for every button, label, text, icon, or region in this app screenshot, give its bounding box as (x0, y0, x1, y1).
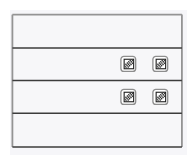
button[interactable]: Image not loaded (152, 56, 168, 72)
button[interactable]: Image not loaded (12, 80, 182, 113)
button[interactable]: Image not loaded (120, 89, 136, 105)
button[interactable]: Image not loaded (152, 89, 168, 105)
button[interactable] (12, 113, 182, 147)
button[interactable]: Image not loaded (12, 48, 182, 80)
button[interactable]: Image not loaded (120, 56, 136, 72)
button[interactable] (12, 15, 182, 48)
